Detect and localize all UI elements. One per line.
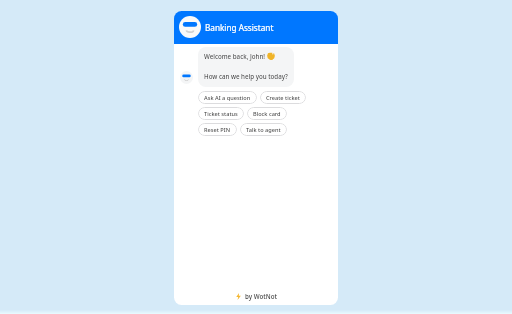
button[interactable]: Reset PIN [198, 123, 237, 136]
button[interactable]: Talk to agent [240, 123, 287, 136]
button[interactable]: Ticket status [198, 107, 244, 120]
button[interactable]: Banking Assistant [174, 11, 338, 44]
staticText: Welcome back, John! [204, 52, 265, 60]
staticText: Create ticket [266, 94, 300, 102]
staticText: by WotNot [245, 292, 278, 300]
staticText: Talk to agent [246, 126, 281, 134]
staticText: Ask AI a question [204, 94, 251, 102]
staticText: Block card [253, 110, 281, 118]
staticText: Ticket status [204, 110, 238, 118]
button[interactable]: Create ticket [260, 91, 306, 104]
button[interactable]: Block card [247, 107, 287, 120]
staticText: How can we help you today? [204, 72, 288, 80]
button[interactable]: Ask AI a question [198, 91, 257, 104]
staticText: Banking Assistant [205, 22, 274, 33]
staticText: Reset PIN [204, 126, 231, 134]
